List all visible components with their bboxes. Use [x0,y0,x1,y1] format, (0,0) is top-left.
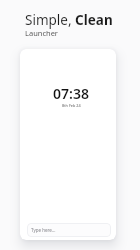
staticText: Launcher [25,28,58,38]
button[interactable]: Type here... [27,223,111,237]
staticText: 07:38 [53,84,89,103]
staticText: Type here... [31,227,56,233]
staticText: Simple, Clean [25,11,113,29]
staticText: 8th Feb 24 [62,103,81,108]
